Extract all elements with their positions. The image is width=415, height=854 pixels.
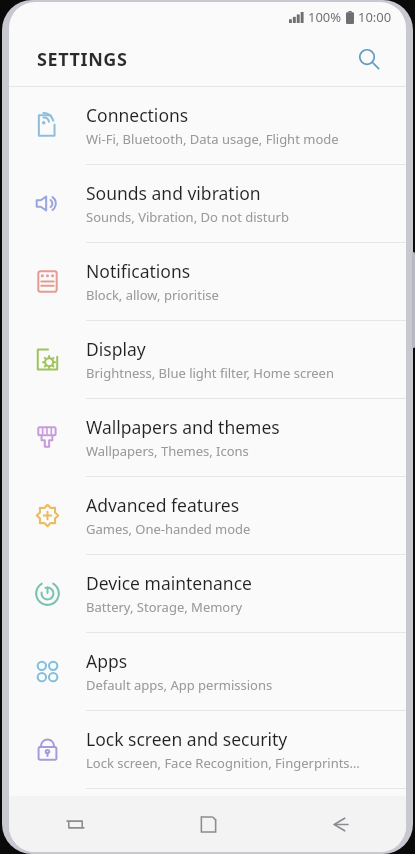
button[interactable]: Connections — [9, 87, 406, 164]
staticText: Games, One-handed mode — [86, 520, 251, 538]
staticText: Apps — [86, 649, 128, 673]
staticText: Default apps, App permissions — [86, 676, 273, 694]
button[interactable]: Apps — [9, 633, 406, 710]
staticText: Wallpapers and themes — [86, 415, 280, 439]
button[interactable]: Search — [346, 36, 392, 82]
staticText: Sounds and vibration — [86, 181, 261, 205]
button[interactable]: Lock screen and security — [9, 711, 406, 788]
staticText: Lock screen and security — [86, 727, 288, 751]
button[interactable]: Back — [274, 796, 406, 852]
button[interactable]: Device maintenance — [9, 555, 406, 632]
button[interactable]: Sounds and vibration — [9, 165, 406, 242]
staticText: Display — [86, 337, 146, 361]
staticText: Wi-Fi, Bluetooth, Data usage, Flight mod… — [86, 130, 339, 148]
staticText: 10:00 — [358, 8, 392, 26]
staticText: Advanced features — [86, 493, 240, 517]
staticText: Wallpapers, Themes, Icons — [86, 442, 249, 460]
button[interactable]: Notifications — [9, 243, 406, 320]
staticText: Connections — [86, 103, 189, 127]
button[interactable]: Recents — [9, 796, 142, 852]
button[interactable]: Advanced features — [9, 477, 406, 554]
staticText: Lock screen, Face Recognition, Fingerpri… — [86, 754, 360, 772]
staticText: Notifications — [86, 259, 191, 283]
staticText: Sounds, Vibration, Do not disturb — [86, 208, 289, 226]
staticText: Block, allow, prioritise — [86, 286, 219, 304]
staticText: SETTINGS — [37, 47, 128, 72]
staticText: 100% — [308, 8, 342, 26]
staticText: Brightness, Blue light filter, Home scre… — [86, 364, 334, 382]
button[interactable]: Home — [142, 796, 274, 852]
button[interactable]: Wallpapers and themes — [9, 399, 406, 476]
button[interactable]: Display — [9, 321, 406, 398]
staticText: Device maintenance — [86, 571, 252, 595]
staticText: Battery, Storage, Memory — [86, 598, 243, 616]
